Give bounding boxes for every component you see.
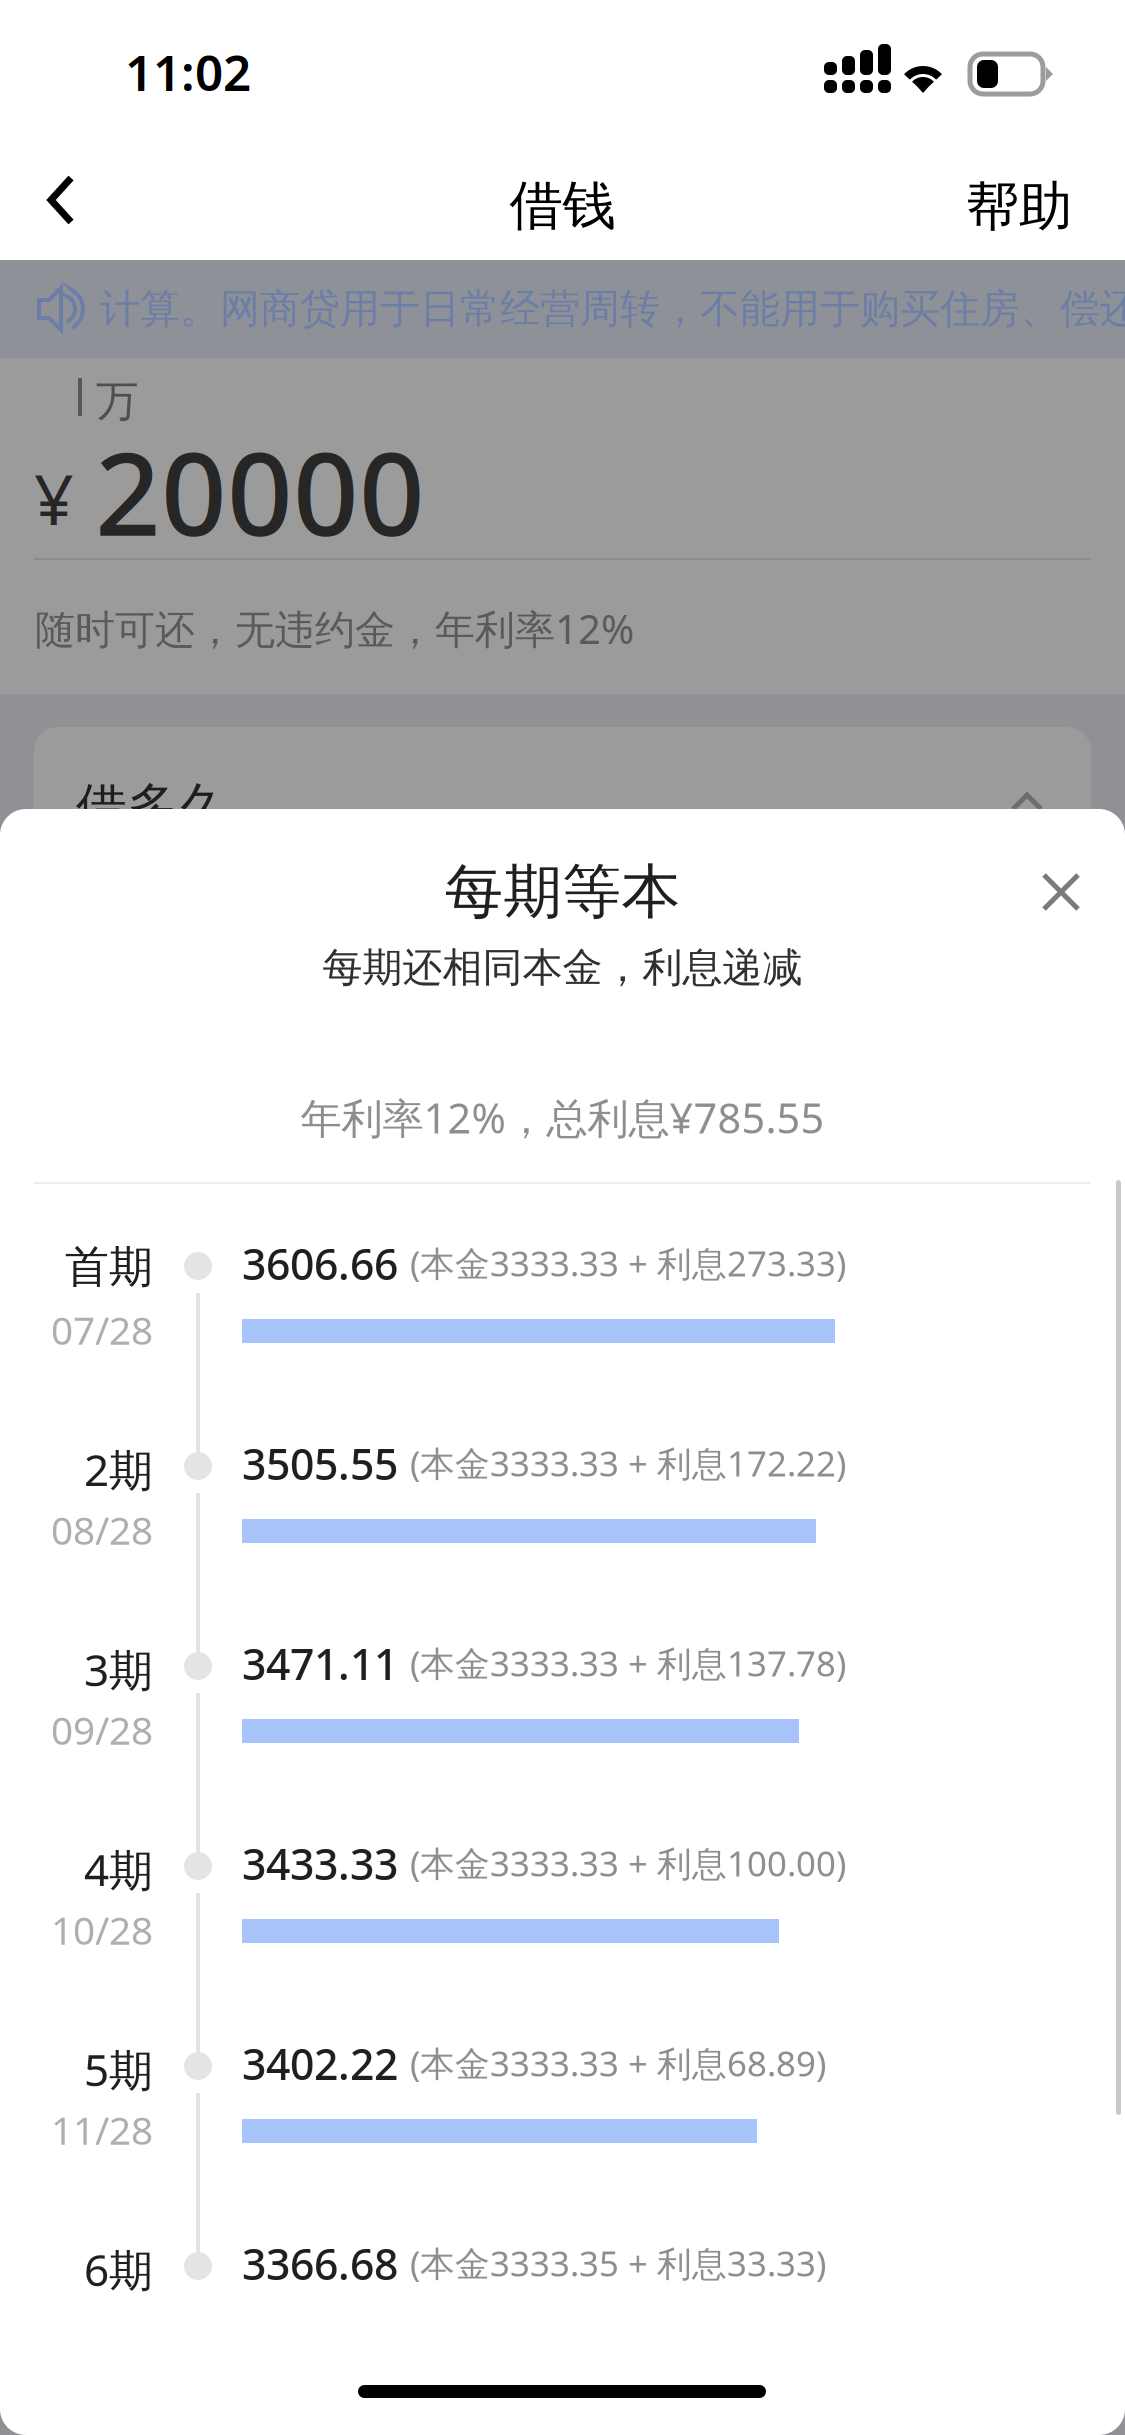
staticText: 帮助 — [966, 174, 1072, 239]
staticText: 07/28 — [51, 1304, 153, 1355]
button[interactable]: Close — [1017, 848, 1105, 936]
staticText: 3606.66 — [242, 1235, 398, 1292]
staticText: 11/28 — [51, 2104, 153, 2155]
staticText: 3471.11 — [242, 1635, 398, 1692]
staticText: 20000 — [95, 415, 425, 567]
staticText: 首期 — [65, 1240, 153, 1294]
staticText: 3366.68 — [242, 2235, 398, 2292]
staticText: 借多久 — [76, 776, 229, 838]
staticText: 计算。网商贷用于日常经营周转，不能用于购买住房、偿还房屋 — [100, 284, 1125, 333]
staticText: (本金3333.33 + 利息273.33) — [410, 1240, 846, 1286]
staticText: 3402.22 — [242, 2035, 398, 2092]
staticText: 4期 — [84, 1840, 153, 1898]
staticText: ¥ — [34, 452, 74, 544]
button[interactable]: Back — [22, 146, 100, 254]
staticText: (本金3333.33 + 利息100.00) — [410, 1840, 846, 1886]
staticText: 3505.55 — [242, 1435, 398, 1492]
staticText: 3433.33 — [242, 1835, 398, 1892]
staticText: 10/28 — [51, 1904, 153, 1955]
staticText: (本金3333.35 + 利息33.33) — [410, 2240, 826, 2286]
staticText: 5期 — [84, 2040, 153, 2098]
staticText: 每期还相同本金，利息递减 — [322, 943, 802, 992]
staticText: (本金3333.33 + 利息137.78) — [410, 1640, 846, 1686]
staticText: (本金3333.33 + 利息172.22) — [410, 1440, 846, 1486]
staticText: 3期 — [84, 1640, 153, 1698]
button[interactable]: 帮助 — [940, 148, 1098, 265]
staticText: 2期 — [84, 1440, 153, 1498]
staticText: 08/28 — [51, 1504, 153, 1555]
staticText: 年利率12%，总利息¥785.55 — [300, 1090, 824, 1145]
staticText: 09/28 — [51, 1704, 153, 1755]
staticText: (本金3333.33 + 利息68.89) — [410, 2040, 826, 2086]
staticText: 6期 — [84, 2240, 153, 2298]
staticText: 11:02 — [125, 39, 251, 104]
staticText: 借钱 — [509, 173, 615, 238]
staticText: 万 — [96, 375, 139, 427]
staticText: 随时可还，无违约金，年利率12% — [35, 602, 634, 655]
staticText: 每期等本 — [444, 856, 680, 928]
